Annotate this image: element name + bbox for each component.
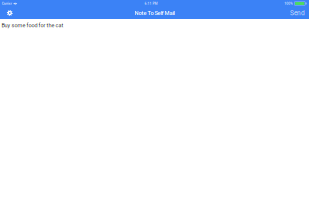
staticText: Buy some food for the cat	[2, 22, 64, 29]
button[interactable]: Settings	[0, 7, 19, 19]
staticText: 100%	[284, 1, 293, 6]
staticText: 6:11 PM	[144, 1, 157, 6]
staticText: Note To Self Mail	[134, 10, 174, 16]
staticText: Send	[290, 9, 305, 17]
staticText: Carrier	[2, 1, 12, 6]
button[interactable]: Send	[286, 7, 309, 19]
